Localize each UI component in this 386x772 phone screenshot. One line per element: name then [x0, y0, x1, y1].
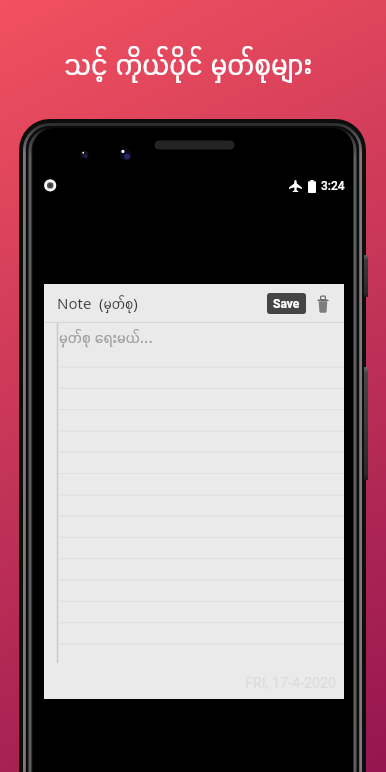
- staticText: သင့် ကိုယ်ပိုင် မှတ်စုများ: [64, 45, 313, 83]
- staticText: မှတ်စု ရေးမယ်...: [59, 326, 153, 348]
- staticText: FRI, 17-4-2020: [245, 675, 337, 692]
- button[interactable]: Save: [267, 293, 306, 314]
- button[interactable]: Delete note: [317, 294, 329, 313]
- staticText: Note (မှတ်စု): [57, 293, 138, 313]
- staticText: Save: [273, 297, 300, 311]
- staticText: 3:24: [321, 179, 345, 193]
